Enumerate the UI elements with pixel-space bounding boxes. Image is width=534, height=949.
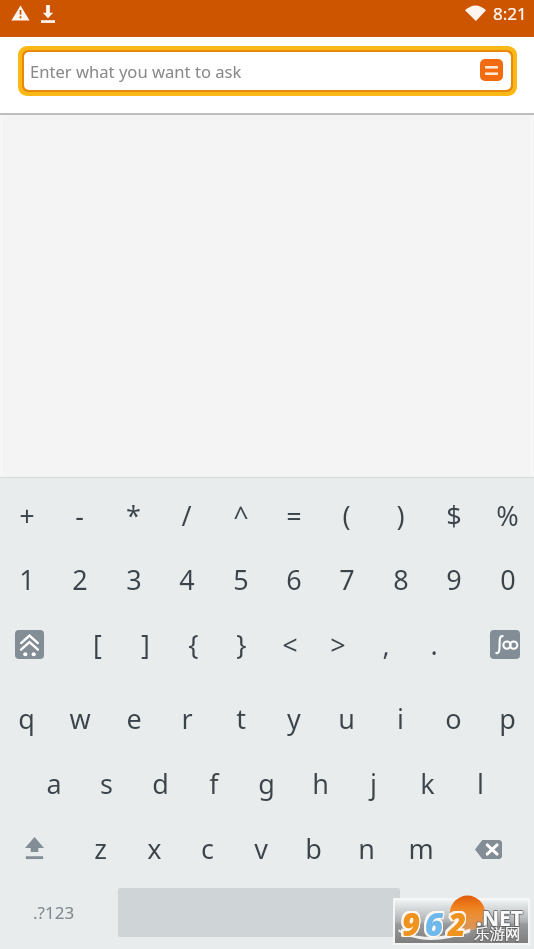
button[interactable]: Enter what you want to ask	[24, 52, 511, 90]
button[interactable]: [	[71, 618, 124, 670]
button[interactable]: Shift	[8, 823, 61, 875]
staticText: .NET	[475, 904, 522, 933]
staticText: 9	[446, 561, 462, 598]
button[interactable]: j	[347, 757, 400, 809]
staticText: o	[445, 700, 462, 737]
button[interactable]: Menu	[480, 59, 503, 81]
staticText: 乐游网	[474, 925, 521, 945]
staticText: 9	[402, 901, 420, 943]
button[interactable]: x	[128, 822, 181, 874]
button[interactable]: 7	[320, 553, 373, 605]
button[interactable]: {	[167, 618, 220, 670]
button[interactable]: r	[160, 692, 213, 744]
button[interactable]: e	[107, 692, 160, 744]
button[interactable]: w	[53, 692, 106, 744]
button[interactable]: %	[481, 489, 534, 541]
staticText: n	[358, 830, 375, 867]
staticText: g	[258, 765, 275, 802]
button[interactable]: q	[0, 692, 53, 744]
button[interactable]: (	[320, 489, 373, 541]
button[interactable]: Backspace	[462, 823, 515, 875]
button[interactable]: p	[481, 692, 534, 744]
staticText: 9	[400, 904, 418, 946]
staticText: ^	[233, 497, 249, 534]
staticText: .NET	[476, 905, 523, 934]
staticText: 6	[423, 903, 441, 945]
button[interactable]: +	[0, 489, 53, 541]
staticText: l	[477, 765, 484, 802]
button[interactable]: Space	[118, 888, 400, 937]
staticText: -	[75, 497, 84, 534]
button[interactable]: d	[134, 757, 187, 809]
button[interactable]: m	[394, 822, 447, 874]
button[interactable]: 9	[427, 553, 480, 605]
staticText: {	[188, 626, 199, 663]
button[interactable]: c	[181, 822, 234, 874]
staticText: 6	[423, 901, 441, 943]
button[interactable]: =	[267, 489, 320, 541]
button[interactable]: k	[401, 757, 454, 809]
staticText: 5	[233, 561, 249, 598]
button[interactable]: 2	[53, 553, 106, 605]
staticText: m	[408, 830, 434, 867]
button[interactable]: u	[320, 692, 373, 744]
button[interactable]: y	[267, 692, 320, 744]
button[interactable]: h	[294, 757, 347, 809]
button[interactable]: >	[311, 618, 364, 670]
staticText: 6	[426, 903, 444, 945]
button[interactable]: -	[53, 489, 106, 541]
button[interactable]: $	[427, 489, 480, 541]
staticText: k	[420, 765, 435, 802]
staticText: }	[236, 626, 247, 663]
button[interactable]: /	[160, 489, 213, 541]
button[interactable]: ]	[119, 618, 172, 670]
button[interactable]: t	[214, 692, 267, 744]
button[interactable]: More symbols	[3, 618, 56, 670]
button[interactable]: a	[27, 757, 80, 809]
staticText: %	[496, 497, 519, 534]
button[interactable]: z	[74, 822, 127, 874]
button[interactable]: i	[374, 692, 427, 744]
button[interactable]: Math symbols	[478, 618, 531, 670]
button[interactable]: n	[340, 822, 393, 874]
button[interactable]: 5	[214, 553, 267, 605]
staticText: /	[181, 497, 192, 534]
button[interactable]: 6	[267, 553, 320, 605]
staticText: s	[100, 765, 113, 802]
staticText: 9	[402, 903, 420, 945]
button[interactable]: 8	[374, 553, 427, 605]
button[interactable]: ,	[359, 618, 412, 670]
staticText: r	[181, 700, 193, 737]
staticText: 0	[500, 561, 516, 598]
button[interactable]: 3	[107, 553, 160, 605]
staticText: 9	[403, 901, 421, 943]
button[interactable]: b	[287, 822, 340, 874]
staticText: 2	[448, 901, 466, 943]
button[interactable]: v	[234, 822, 287, 874]
staticText: p	[499, 700, 516, 737]
button[interactable]: )	[374, 489, 427, 541]
staticText: 9	[400, 903, 418, 945]
button[interactable]: }	[215, 618, 268, 670]
button[interactable]: s	[80, 757, 133, 809]
staticText: 6	[425, 903, 443, 945]
button[interactable]: 0	[481, 553, 534, 605]
button[interactable]: l	[454, 757, 507, 809]
staticText: (	[342, 497, 351, 534]
staticText: 6	[425, 904, 443, 946]
button[interactable]: *	[107, 489, 160, 541]
button[interactable]: .?123	[27, 888, 80, 937]
staticText: 乐游网	[474, 923, 521, 943]
button[interactable]: 4	[160, 553, 213, 605]
button[interactable]: 1	[0, 553, 53, 605]
button[interactable]: g	[240, 757, 293, 809]
staticText: 2	[446, 904, 464, 946]
button[interactable]: .	[407, 618, 460, 670]
button[interactable]: ^	[214, 489, 267, 541]
staticText: 9	[403, 904, 421, 946]
button[interactable]: <	[263, 618, 316, 670]
staticText: 9	[403, 903, 421, 945]
button[interactable]: f	[187, 757, 240, 809]
staticText: [	[93, 626, 102, 663]
button[interactable]: o	[427, 692, 480, 744]
